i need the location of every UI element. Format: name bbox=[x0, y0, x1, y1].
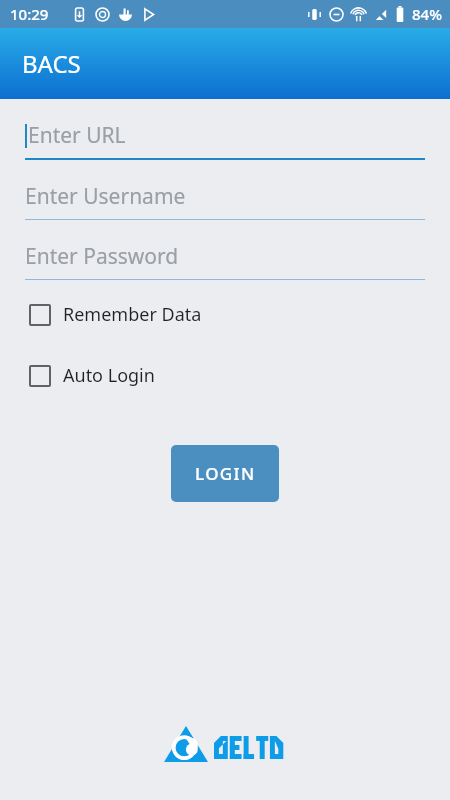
staticText: Remember Data bbox=[63, 302, 202, 327]
staticText: Auto Login bbox=[63, 363, 155, 388]
staticText: Enter Password bbox=[25, 242, 179, 271]
staticText: 84% bbox=[412, 4, 442, 24]
button[interactable]: Auto Login bbox=[29, 363, 421, 388]
button[interactable]: Remember Data bbox=[29, 302, 421, 327]
staticText: BACS bbox=[22, 47, 81, 80]
staticText: Enter URL bbox=[28, 121, 126, 150]
staticText: Enter Username bbox=[25, 182, 186, 211]
button[interactable]: LOGIN bbox=[171, 445, 279, 502]
staticText: LOGIN bbox=[195, 462, 256, 485]
staticText: 10:29 bbox=[10, 4, 49, 24]
button[interactable]: Enter Username bbox=[25, 182, 425, 220]
button[interactable]: Enter Password bbox=[25, 242, 425, 280]
button[interactable]: Enter URL bbox=[25, 121, 425, 160]
